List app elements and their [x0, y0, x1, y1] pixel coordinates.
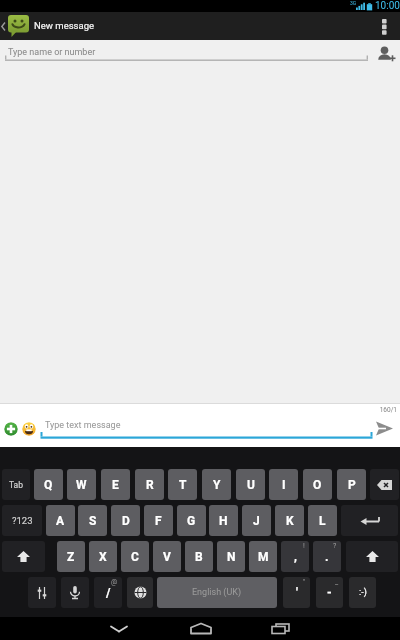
staticText: / — [106, 586, 111, 600]
button[interactable]: J — [242, 505, 271, 536]
staticText: " — [303, 578, 306, 586]
button[interactable]: , — [281, 541, 309, 572]
button[interactable]: W — [67, 469, 96, 500]
staticText: U — [247, 478, 255, 492]
button[interactable] — [28, 577, 56, 608]
staticText: ' — [296, 586, 298, 600]
staticText: :-) — [359, 587, 367, 598]
button[interactable] — [2, 541, 45, 572]
staticText: K — [286, 514, 294, 528]
staticText: Type name or number — [8, 47, 96, 58]
button[interactable]: :-) — [349, 577, 376, 608]
staticText: S — [89, 514, 97, 528]
button[interactable]: / — [94, 577, 122, 608]
button[interactable] — [372, 43, 398, 67]
button[interactable]: D — [111, 505, 140, 536]
button[interactable] — [8, 14, 32, 38]
button[interactable]: R — [135, 469, 164, 500]
button[interactable]: ' — [283, 577, 310, 608]
staticText: X — [99, 550, 107, 564]
button[interactable] — [341, 505, 398, 536]
button[interactable]: L — [308, 505, 337, 536]
staticText: I — [282, 478, 286, 492]
button[interactable]: P — [337, 469, 366, 500]
staticText: M — [258, 550, 269, 564]
staticText: Tab — [9, 480, 23, 490]
button[interactable]: T — [168, 469, 197, 500]
staticText: F — [155, 514, 162, 528]
staticText: ?123 — [12, 515, 33, 526]
staticText: R — [146, 478, 154, 492]
staticText: 3G — [350, 0, 357, 6]
staticText: Q — [44, 478, 53, 492]
button[interactable]: I — [269, 469, 298, 500]
staticText: L — [319, 514, 326, 528]
button[interactable] — [374, 421, 396, 437]
button[interactable]: H — [209, 505, 238, 536]
staticText: J — [253, 514, 260, 528]
button[interactable]: Q — [34, 469, 63, 500]
button[interactable] — [265, 617, 297, 640]
button[interactable]: F — [144, 505, 173, 536]
button[interactable] — [185, 617, 217, 640]
staticText: T — [179, 478, 187, 492]
staticText: P — [348, 478, 356, 492]
button[interactable] — [103, 617, 135, 640]
button[interactable]: X — [89, 541, 117, 572]
button[interactable]: V — [153, 541, 181, 572]
button[interactable]: G — [177, 505, 206, 536]
staticText: ? — [333, 542, 337, 550]
staticText: A — [56, 514, 65, 528]
button[interactable] — [61, 577, 89, 608]
button[interactable]: Tab — [2, 469, 30, 500]
button[interactable] — [22, 422, 36, 436]
staticText: 10:00 — [375, 0, 400, 12]
button[interactable]: S — [78, 505, 107, 536]
button[interactable]: E — [101, 469, 130, 500]
button[interactable] — [346, 541, 398, 572]
button[interactable]: English (UK) — [157, 577, 277, 608]
staticText: . — [325, 550, 329, 564]
staticText: B — [195, 550, 203, 564]
button[interactable] — [127, 577, 153, 608]
staticText: D — [122, 514, 130, 528]
button[interactable]: ?123 — [2, 505, 42, 536]
staticText: New message — [34, 20, 95, 31]
button[interactable]: U — [236, 469, 265, 500]
staticText: N — [227, 550, 236, 564]
button[interactable] — [370, 12, 400, 40]
staticText: _ — [335, 578, 339, 586]
button[interactable]: - — [316, 577, 343, 608]
staticText: O — [313, 478, 322, 492]
staticText: C — [131, 550, 139, 564]
staticText: Type text message — [45, 420, 121, 431]
button[interactable]: K — [275, 505, 304, 536]
staticText: @ — [111, 578, 118, 586]
button[interactable]: Z — [57, 541, 85, 572]
staticText: 160/1 — [375, 406, 397, 414]
button[interactable]: B — [185, 541, 213, 572]
staticText: V — [163, 550, 171, 564]
button[interactable]: A — [46, 505, 75, 536]
staticText: , — [294, 550, 297, 564]
staticText: E — [112, 478, 119, 492]
button[interactable]: O — [303, 469, 332, 500]
button[interactable]: C — [121, 541, 149, 572]
button[interactable]: Y — [202, 469, 231, 500]
button[interactable]: . — [313, 541, 341, 572]
button[interactable]: N — [217, 541, 245, 572]
staticText: English (UK) — [192, 587, 242, 598]
staticText: H — [219, 514, 228, 528]
staticText: W — [76, 478, 87, 492]
staticText: Y — [213, 478, 221, 492]
staticText: - — [327, 586, 332, 600]
button[interactable]: Type name or number — [0, 40, 400, 68]
button[interactable] — [4, 422, 18, 436]
staticText: Z — [67, 550, 75, 564]
staticText: ! — [303, 542, 305, 550]
button[interactable] — [370, 469, 399, 500]
staticText: G — [187, 514, 196, 528]
button[interactable]: M — [249, 541, 277, 572]
